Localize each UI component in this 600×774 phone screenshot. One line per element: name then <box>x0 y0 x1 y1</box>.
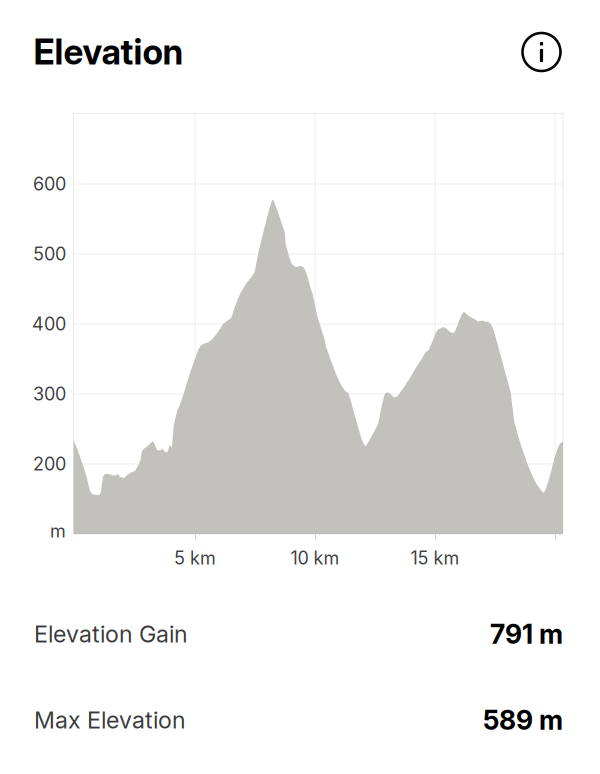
staticText: 589 m <box>483 704 563 736</box>
staticText: 600 <box>33 173 66 195</box>
staticText: 791 m <box>490 618 563 650</box>
staticText: 300 <box>33 383 66 405</box>
staticText: 400 <box>32 313 66 335</box>
staticText: 15 km <box>410 547 459 569</box>
button[interactable]: Info <box>519 30 563 74</box>
staticText: Elevation Gain <box>34 620 188 648</box>
staticText: Max Elevation <box>34 706 186 734</box>
staticText: 10 km <box>290 547 339 569</box>
staticText: m <box>50 520 66 542</box>
staticText: 5 km <box>174 547 216 569</box>
staticText: 200 <box>33 453 66 475</box>
staticText: Elevation <box>33 31 183 73</box>
staticText: 500 <box>33 243 66 265</box>
